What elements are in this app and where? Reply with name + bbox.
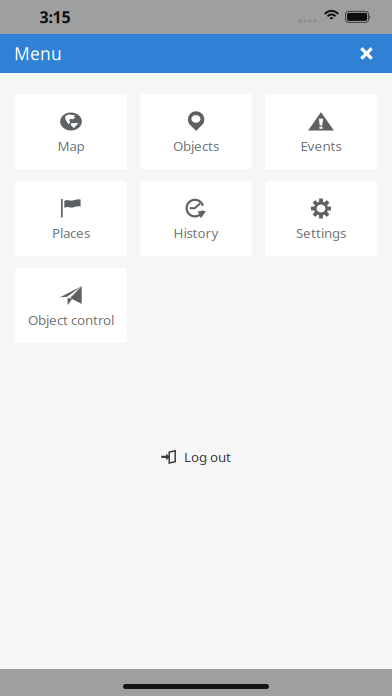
staticText: 3:15 (39, 6, 70, 28)
staticText: Log out (184, 448, 231, 466)
button[interactable]: Places (15, 181, 126, 256)
staticText: Events (300, 137, 341, 155)
button[interactable]: Object control (15, 268, 126, 343)
staticText: Object control (28, 311, 114, 329)
button[interactable]: Objects (140, 94, 251, 169)
staticText: Places (52, 224, 90, 242)
button[interactable]: Map (15, 94, 126, 169)
staticText: History (173, 224, 218, 242)
staticText: Objects (173, 137, 219, 155)
button[interactable]: Close (345, 34, 388, 73)
button[interactable]: Events (265, 94, 376, 169)
staticText: Menu (14, 42, 62, 65)
button[interactable]: History (140, 181, 251, 256)
staticText: Settings (296, 224, 346, 242)
button[interactable]: Log out (153, 440, 239, 474)
staticText: Map (57, 137, 84, 155)
button[interactable]: Settings (265, 181, 376, 256)
